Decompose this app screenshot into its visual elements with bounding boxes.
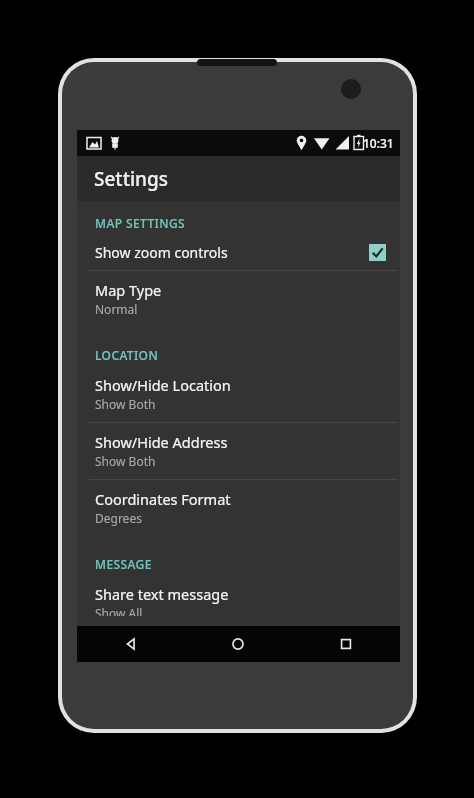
button[interactable]: Share text message [83,575,400,626]
staticText: MAP SETTINGS [95,215,400,231]
button[interactable]: Map Type [83,271,400,327]
staticText: LOCATION [95,347,400,363]
staticText: Show Both [95,396,156,412]
other: Show zoom controls checkbox, checked [369,244,386,261]
staticText: Show/Hide Location [95,375,231,395]
staticText: Normal [95,301,138,317]
button[interactable]: Coordinates Format [83,480,400,536]
button[interactable]: Show zoom controls [83,234,400,270]
staticText: Show zoom controls [95,243,369,262]
staticText: Share text message [95,584,229,604]
staticText: MESSAGE [95,556,400,572]
staticText: Show All [95,605,143,616]
button[interactable]: Show/Hide Location [83,366,400,422]
staticText: Coordinates Format [95,489,231,509]
button[interactable]: Recent apps [292,626,400,662]
staticText: Map Type [95,280,162,300]
staticText: Show Both [95,453,156,469]
staticText: 10:31 [363,135,394,151]
staticText: Show/Hide Address [95,432,228,452]
button[interactable]: Settings [77,156,400,201]
staticText: Degrees [95,510,142,526]
staticText: Settings [94,166,168,192]
button[interactable]: Home [184,626,292,662]
button[interactable]: Back [77,626,184,662]
button[interactable]: Show/Hide Address [83,423,400,479]
